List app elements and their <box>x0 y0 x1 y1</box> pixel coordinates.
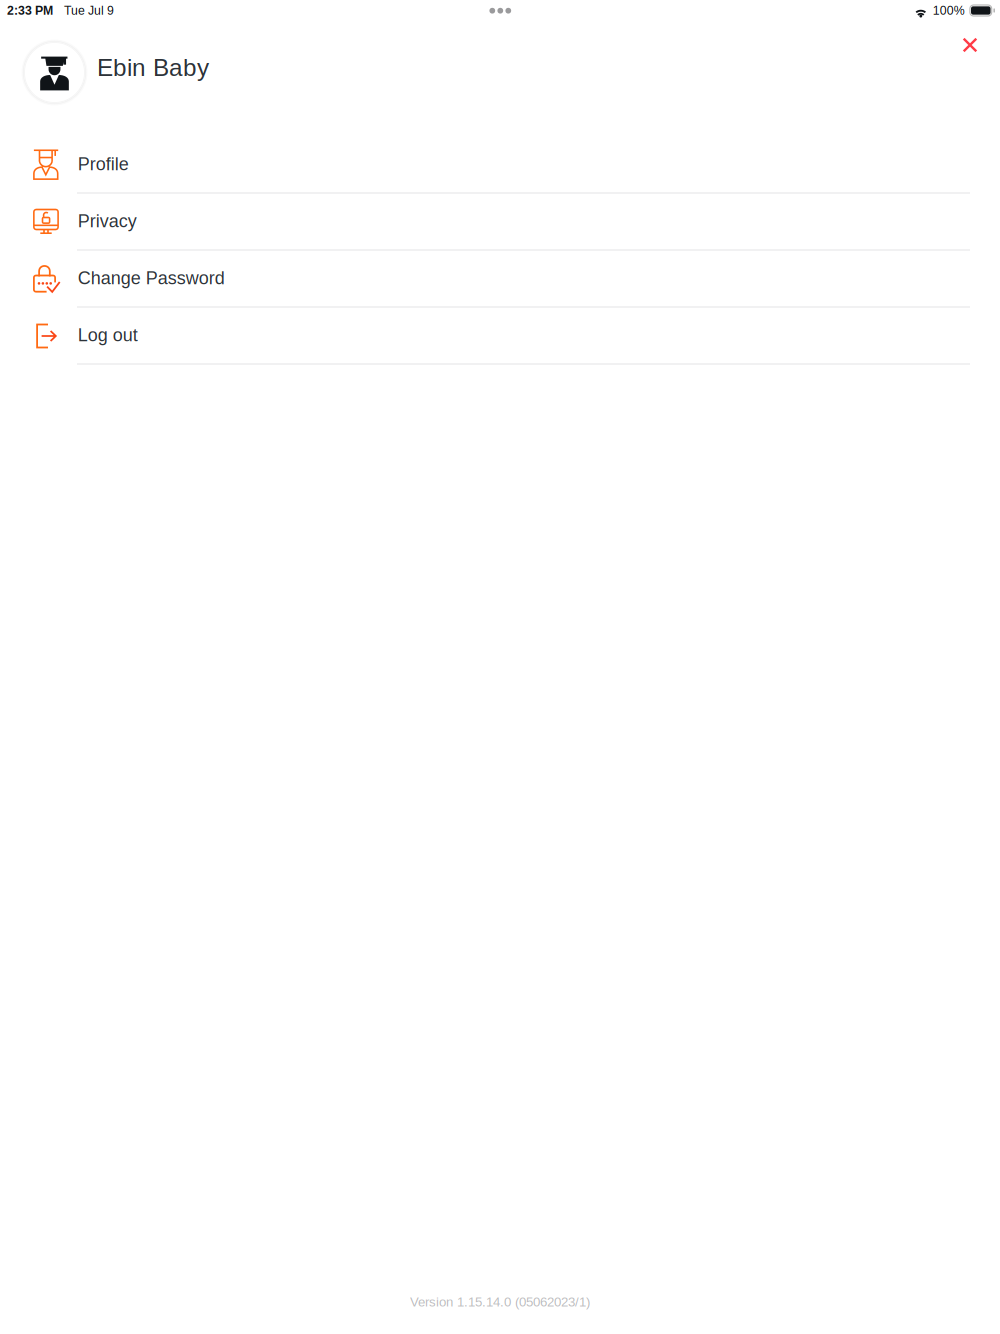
staticText: Privacy <box>78 211 137 231</box>
staticText: Ebin Baby <box>97 54 209 81</box>
staticText: Profile <box>78 154 129 174</box>
staticText: Change Password <box>78 268 225 288</box>
staticText: 2:33 PM <box>7 4 53 17</box>
staticText: Version 1.15.14.0 (05062023/1) <box>410 1295 590 1309</box>
button[interactable]: Profile <box>0 137 1000 194</box>
staticText: 100% <box>933 4 965 17</box>
staticText: Log out <box>78 325 138 345</box>
button[interactable]: Close <box>947 22 993 68</box>
button[interactable]: Log out <box>0 308 1000 365</box>
button[interactable]: Change Password <box>0 251 1000 308</box>
button[interactable]: Privacy <box>0 194 1000 251</box>
staticText: Tue Jul 9 <box>64 4 114 17</box>
